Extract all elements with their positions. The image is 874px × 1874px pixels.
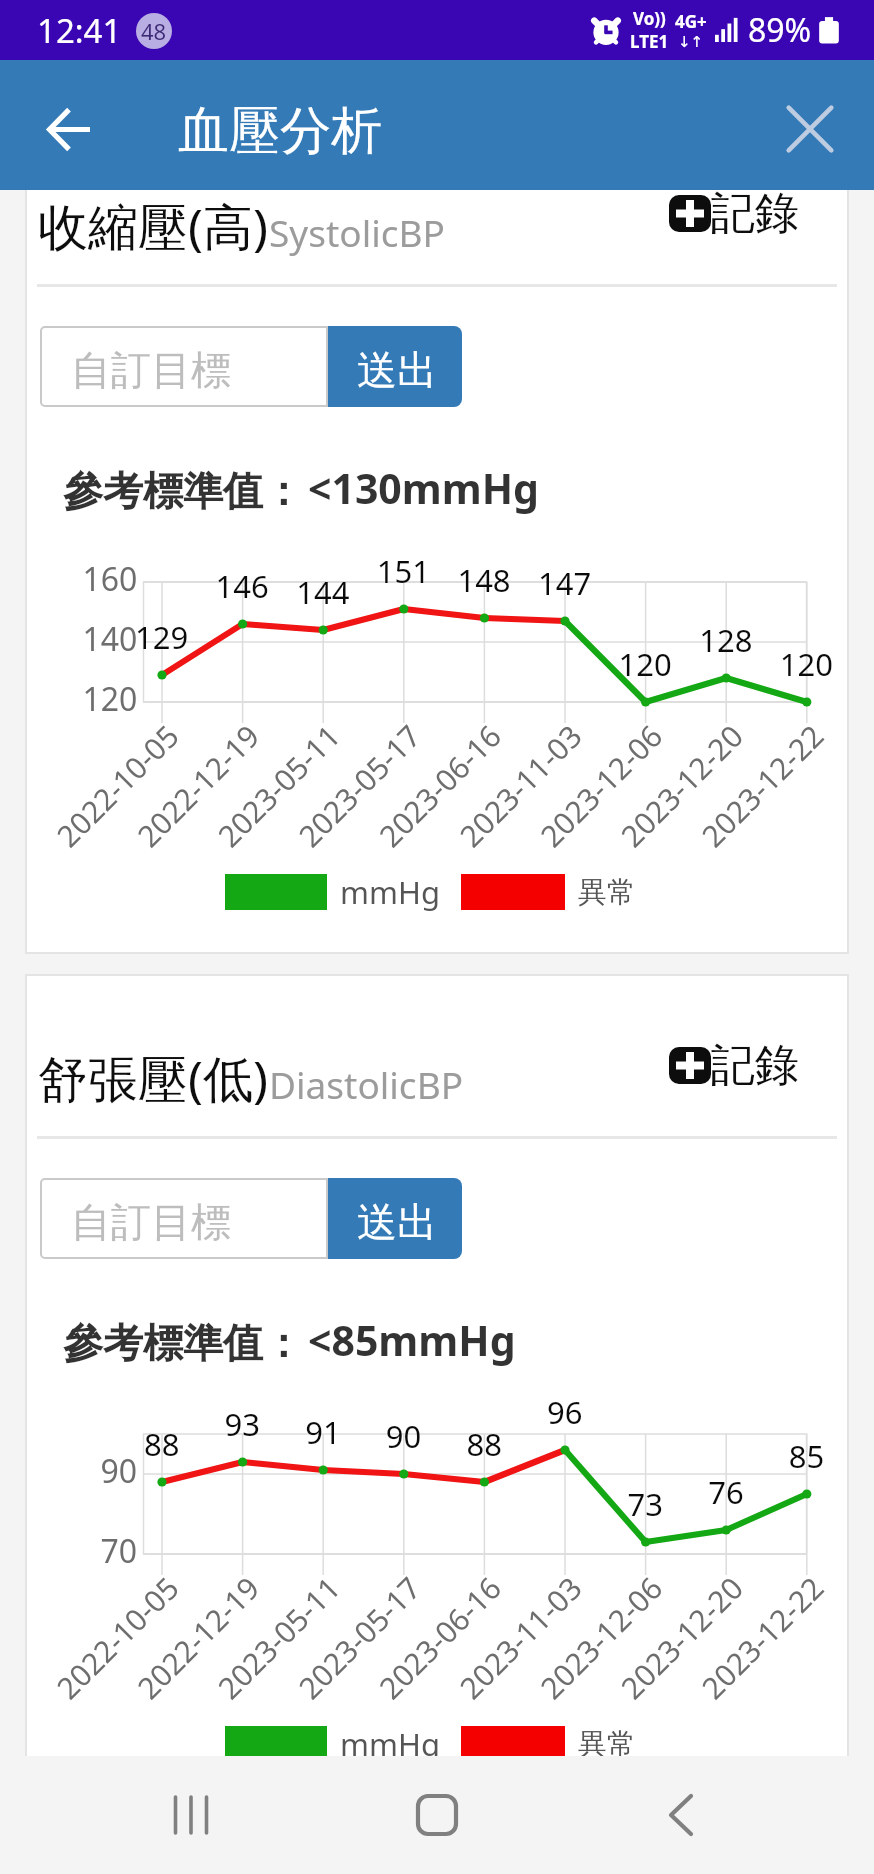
staticText: 記錄 xyxy=(711,1038,799,1093)
button[interactable]: 記錄 xyxy=(669,190,799,241)
staticText: 記錄 xyxy=(711,190,799,241)
staticText: 收縮壓(高) xyxy=(38,192,268,260)
staticText: SystolicBP xyxy=(269,207,445,257)
button[interactable]: Back xyxy=(27,88,110,171)
staticText: 自訂目標 xyxy=(71,1197,231,1247)
staticText: 舒張壓(低) xyxy=(38,1044,268,1112)
staticText: 參考標準值： xyxy=(63,1318,303,1368)
staticText: 送出 xyxy=(357,1197,437,1247)
staticText: 4G+ xyxy=(675,10,707,33)
staticText: LTE1 xyxy=(630,30,669,53)
staticText: mmHg xyxy=(340,1723,441,1756)
button[interactable]: Back xyxy=(631,1765,731,1865)
button[interactable]: 送出 xyxy=(328,326,462,407)
staticText: 血壓分析 xyxy=(178,99,382,163)
staticText: ↓↑ xyxy=(678,33,704,50)
staticText: mmHg xyxy=(340,871,441,913)
button[interactable]: Home xyxy=(387,1765,487,1865)
staticText: 12:41 xyxy=(37,8,122,53)
button[interactable]: 自訂目標 xyxy=(40,1178,328,1259)
staticText: 自訂目標 xyxy=(71,345,231,395)
staticText: 參考標準值： xyxy=(63,466,303,516)
staticText: DiastolicBP xyxy=(269,1059,464,1109)
button[interactable]: 自訂目標 xyxy=(40,326,328,407)
staticText: 異常 xyxy=(578,874,636,911)
button[interactable]: Recent apps xyxy=(141,1765,241,1865)
button[interactable]: 記錄 xyxy=(669,1038,799,1093)
staticText: 89% xyxy=(748,8,812,52)
button[interactable]: Close xyxy=(772,91,848,167)
staticText: <130mmHg xyxy=(308,460,540,516)
staticText: Vo)) xyxy=(633,7,666,30)
staticText: 送出 xyxy=(357,345,437,395)
staticText: 異常 xyxy=(578,1726,636,1756)
staticText: <85mmHg xyxy=(308,1312,516,1368)
staticText: 48 xyxy=(141,16,167,46)
button[interactable]: 送出 xyxy=(328,1178,462,1259)
